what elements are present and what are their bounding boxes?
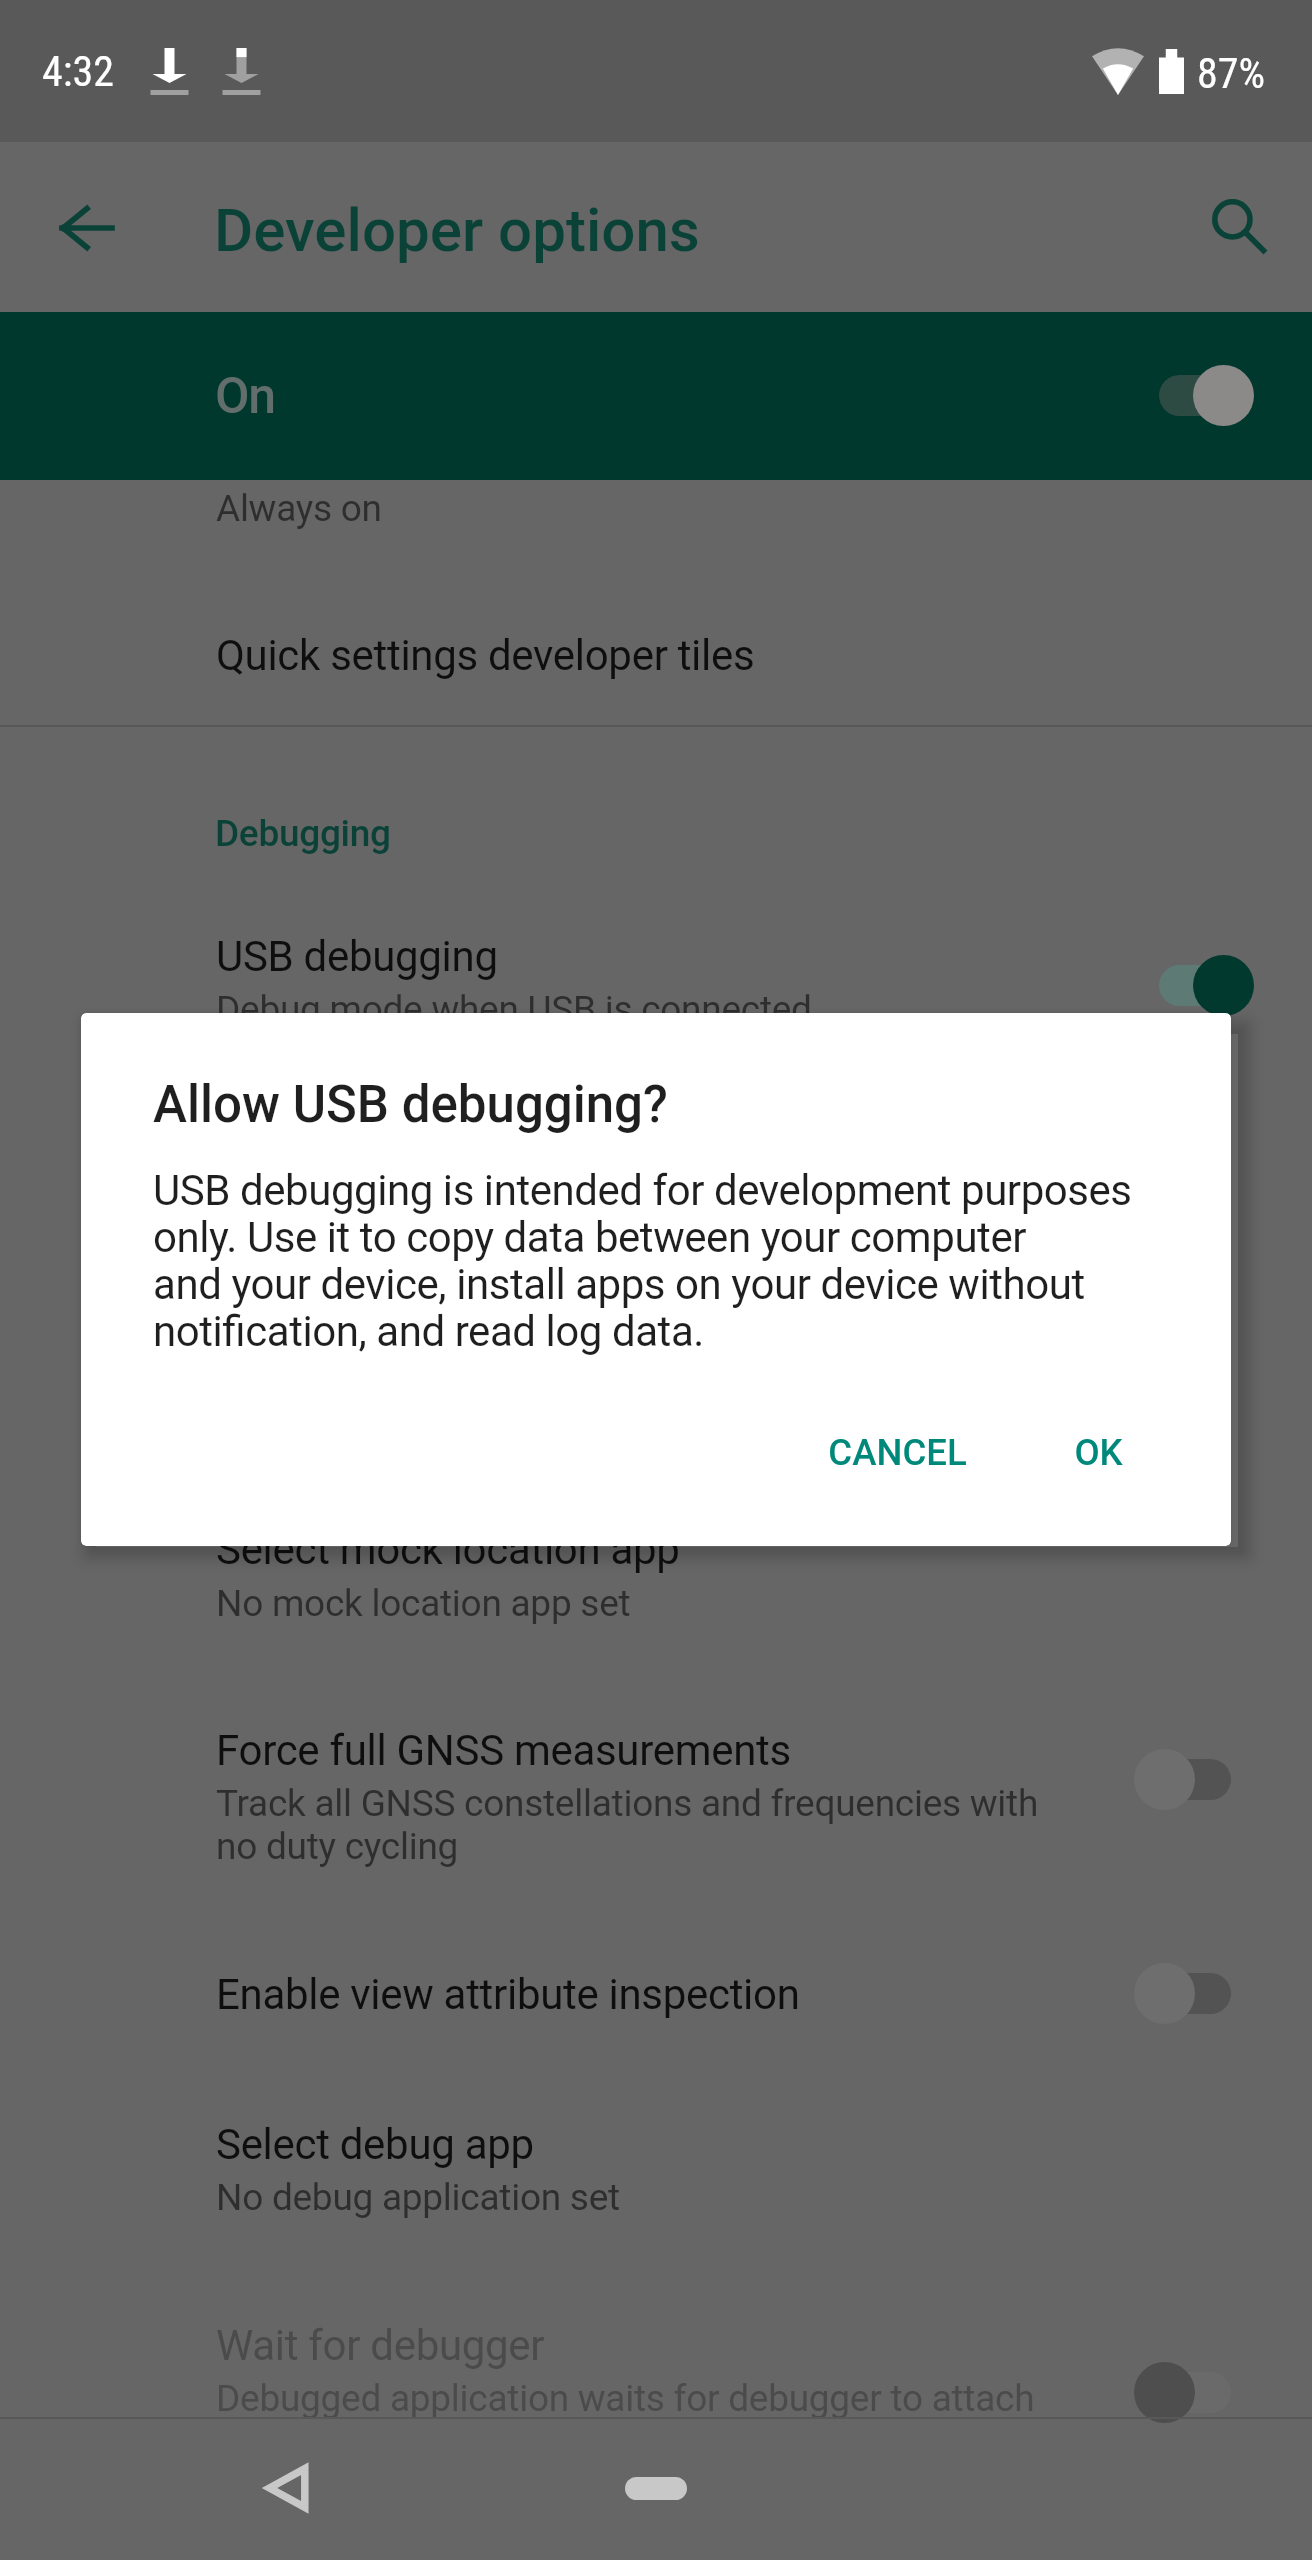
staticText: Debug mode when USB is connected	[216, 988, 812, 1031]
button[interactable]: Use developer options	[0, 312, 1312, 480]
button[interactable]: CANCEL	[817, 1398, 977, 1506]
staticText: Always on	[216, 487, 382, 530]
staticText: Select debug app	[216, 2120, 534, 2169]
staticText: Force full GNSS measurements	[216, 1726, 791, 1775]
button[interactable]	[0, 1487, 1312, 1655]
staticText: No mock location app set	[216, 1582, 631, 1625]
staticText: Quick settings developer tiles	[216, 631, 755, 680]
staticText: CANCEL	[828, 1431, 967, 1474]
button[interactable]: Search	[1190, 185, 1276, 271]
staticText: Select mock location app	[216, 1525, 680, 1574]
staticText: Debugged application waits for debugger …	[216, 2377, 1035, 2420]
staticText: OK	[1074, 1431, 1123, 1474]
button[interactable]: Navigate up	[43, 185, 129, 271]
button[interactable]	[0, 1687, 1312, 1855]
staticText: On	[215, 367, 275, 426]
staticText: 4:32	[42, 47, 115, 96]
button[interactable]	[0, 592, 1312, 704]
staticText: Allow USB debugging?	[153, 1075, 668, 1135]
button[interactable]	[0, 2081, 1312, 2249]
button[interactable]: Back	[245, 2445, 331, 2531]
staticText: Debugging	[215, 812, 391, 855]
staticText: Track all GNSS constellations and freque…	[216, 1782, 1039, 1868]
staticText: No debug application set	[216, 2176, 620, 2219]
button[interactable]	[0, 2282, 1312, 2450]
button[interactable]: Home	[613, 2445, 699, 2531]
staticText: Enable view attribute inspection	[216, 1970, 800, 2019]
staticText: USB debugging	[216, 932, 498, 981]
button[interactable]	[0, 1931, 1312, 2043]
button[interactable]: OK	[1038, 1398, 1158, 1506]
staticText: USB debugging is intended for developmen…	[153, 1166, 1132, 1357]
staticText: Wait for debugger	[216, 2321, 545, 2370]
staticText: Developer options	[214, 195, 700, 265]
staticText: 87%	[1197, 49, 1266, 98]
button[interactable]	[0, 893, 1312, 1061]
